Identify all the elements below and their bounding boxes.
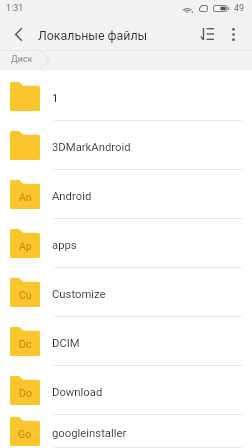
button[interactable]: 3DMarkAndroid xyxy=(0,121,252,170)
staticText: 1 xyxy=(52,92,59,105)
staticText: Диск xyxy=(11,54,33,65)
button[interactable]: Back xyxy=(0,17,37,51)
staticText: Cu xyxy=(19,289,32,301)
staticText: apps xyxy=(52,239,77,252)
staticText: 1:31 xyxy=(6,3,24,14)
staticText: Ap xyxy=(19,240,32,252)
button[interactable]: 1 xyxy=(0,72,252,121)
staticText: Dc xyxy=(19,338,32,350)
staticText: Go xyxy=(18,428,32,440)
staticText: 3DMarkAndroid xyxy=(52,141,131,154)
button[interactable]: Диск xyxy=(0,51,50,68)
button[interactable]: Dc xyxy=(0,317,252,366)
button[interactable]: Ap xyxy=(0,219,252,268)
staticText: An xyxy=(19,191,32,203)
staticText: Download xyxy=(52,386,103,399)
staticText: Do xyxy=(19,387,32,399)
staticText: Локальные файлы xyxy=(38,28,148,43)
button[interactable]: More options xyxy=(215,17,252,51)
staticText: 49 xyxy=(234,3,245,14)
button[interactable]: Do xyxy=(0,366,252,415)
button[interactable]: Go xyxy=(0,415,252,448)
button[interactable]: An xyxy=(0,170,252,219)
button[interactable]: Sort xyxy=(192,17,222,51)
staticText: DCIM xyxy=(52,337,80,350)
staticText: Customize xyxy=(52,288,106,301)
staticText: Android xyxy=(52,190,92,203)
button[interactable]: Cu xyxy=(0,268,252,317)
staticText: googleinstaller xyxy=(52,427,127,440)
